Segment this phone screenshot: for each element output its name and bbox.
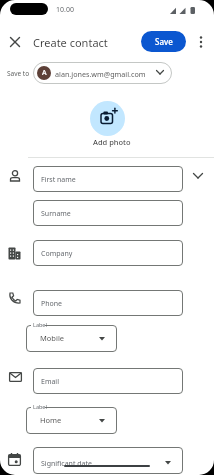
staticText: Email <box>41 377 59 387</box>
staticText: Save to <box>7 69 30 78</box>
staticText: Add photo <box>93 137 131 147</box>
staticText: alan.jones.wm@gmail.com <box>55 69 146 79</box>
staticText: Significant date <box>41 459 92 469</box>
staticText: 10.00 <box>56 5 74 15</box>
staticText: Mobile <box>40 333 65 343</box>
staticText: Company <box>41 249 73 259</box>
staticText: Label <box>33 403 47 410</box>
staticText: Phone <box>41 299 63 309</box>
staticText: First name <box>41 175 76 185</box>
staticText: Label <box>33 321 47 328</box>
staticText: Surname <box>41 209 71 219</box>
staticText: A <box>42 68 47 78</box>
staticText: Home <box>40 415 62 425</box>
staticText: Create contact <box>33 35 108 50</box>
staticText: Save <box>155 36 173 47</box>
